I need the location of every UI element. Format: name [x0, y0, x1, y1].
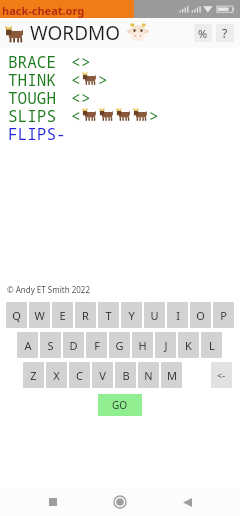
staticText: TOUGH [8, 87, 57, 105]
staticText: THINK [8, 69, 57, 87]
button[interactable]: W [29, 302, 50, 328]
staticText: Y [128, 308, 135, 323]
staticText: R [82, 308, 89, 323]
button[interactable]: F [86, 332, 107, 358]
button[interactable]: N [138, 362, 159, 388]
button[interactable]: S [40, 332, 61, 358]
staticText: © Andy ET Smith 2022 [7, 284, 90, 295]
button[interactable]: Help [216, 24, 234, 42]
button[interactable]: D [63, 332, 84, 358]
staticText: V [99, 368, 106, 383]
button[interactable]: R [75, 302, 96, 328]
button[interactable]: O [190, 302, 211, 328]
button[interactable]: M [161, 362, 182, 388]
button[interactable]: J [155, 332, 176, 358]
staticText: B [122, 368, 130, 383]
staticText: ? [222, 25, 228, 41]
staticText: O [196, 308, 205, 323]
staticText: Z [30, 368, 37, 383]
button[interactable]: Statistics [194, 24, 212, 42]
staticText: A [24, 338, 32, 353]
button[interactable]: L [201, 332, 222, 358]
staticText: BRACE [8, 51, 57, 69]
button[interactable]: C [69, 362, 90, 388]
staticText: < [71, 87, 81, 105]
staticText: X [53, 368, 60, 383]
staticText: W [34, 308, 45, 323]
button[interactable]: Home [106, 488, 134, 516]
staticText: <- [217, 369, 226, 381]
button[interactable]: T [98, 302, 119, 328]
staticText: > [98, 69, 108, 87]
staticText: < [71, 51, 81, 69]
staticText: F [94, 338, 100, 353]
button[interactable]: X [46, 362, 67, 388]
button[interactable]: GO [98, 394, 142, 416]
staticText: SLIPS [8, 105, 57, 123]
button[interactable]: B [115, 362, 136, 388]
staticText: E [59, 308, 66, 323]
staticText: K [185, 338, 192, 353]
staticText: U [150, 308, 159, 323]
staticText: WORDMO [30, 20, 121, 46]
button[interactable]: I [167, 302, 188, 328]
staticText: J [164, 338, 168, 353]
button[interactable]: Backspace [211, 362, 232, 388]
staticText: L [209, 338, 215, 353]
button[interactable]: A [17, 332, 38, 358]
button[interactable]: P [213, 302, 234, 328]
staticText: G [115, 338, 124, 353]
staticText: GO [112, 398, 128, 412]
button[interactable]: Recents [39, 488, 67, 516]
staticText: > [149, 105, 159, 123]
staticText: S [47, 338, 54, 353]
staticText: C [76, 368, 83, 383]
staticText: N [144, 368, 153, 383]
staticText: P [220, 308, 227, 323]
staticText: T [105, 308, 112, 323]
button[interactable]: V [92, 362, 113, 388]
staticText: I [176, 308, 180, 323]
button[interactable]: H [132, 332, 153, 358]
staticText: < [71, 69, 81, 87]
staticText: FLIPS- [8, 123, 66, 141]
button[interactable]: E [52, 302, 73, 328]
staticText: < [71, 105, 81, 123]
button[interactable]: Back [173, 488, 201, 516]
staticText: D [69, 338, 78, 353]
button[interactable]: Q [6, 302, 27, 328]
staticText: M [167, 368, 177, 383]
staticText: H [138, 338, 147, 353]
staticText: Q [12, 308, 21, 323]
button[interactable]: Z [23, 362, 44, 388]
button[interactable]: K [178, 332, 199, 358]
button[interactable]: U [144, 302, 165, 328]
staticText: > [81, 87, 91, 105]
button[interactable]: Y [121, 302, 142, 328]
button[interactable]: G [109, 332, 130, 358]
staticText: > [81, 51, 91, 69]
staticText: % [198, 26, 208, 41]
staticText: hack-cheat.org [2, 3, 85, 18]
